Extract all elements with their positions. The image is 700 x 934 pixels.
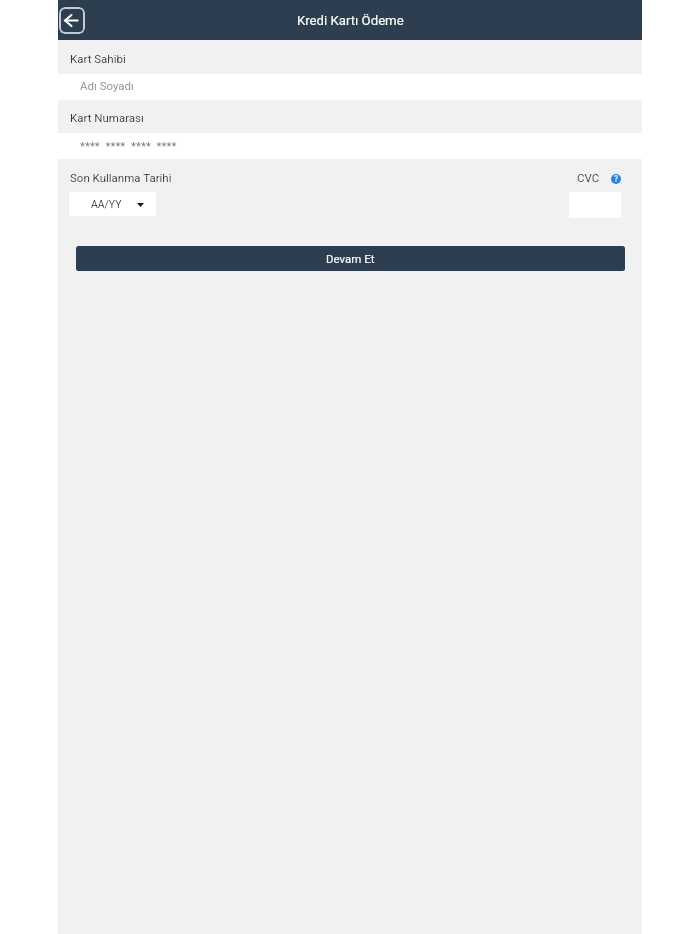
button[interactable]: Adı Soyadı — [58, 74, 642, 100]
button[interactable]: AA/YY — [69, 192, 156, 216]
button[interactable]: Devam Et — [76, 246, 625, 271]
staticText: Devam Et — [326, 252, 375, 265]
staticText: Son Kullanma Tarihi — [70, 171, 172, 184]
staticText: Adı Soyadı — [80, 79, 134, 92]
staticText: Kart Numarası — [70, 111, 144, 124]
staticText: **** **** **** **** — [80, 139, 177, 152]
button[interactable]: What is CVC? — [611, 174, 621, 184]
staticText: Kart Sahibi — [70, 52, 126, 65]
staticText: AA/YY — [91, 198, 122, 210]
staticText: CVC — [577, 171, 600, 184]
staticText: Kredi Kartı Ödeme — [297, 13, 404, 28]
button[interactable]: **** **** **** **** — [58, 133, 642, 159]
button[interactable]: Back — [59, 7, 85, 34]
staticText: ? — [614, 174, 619, 184]
